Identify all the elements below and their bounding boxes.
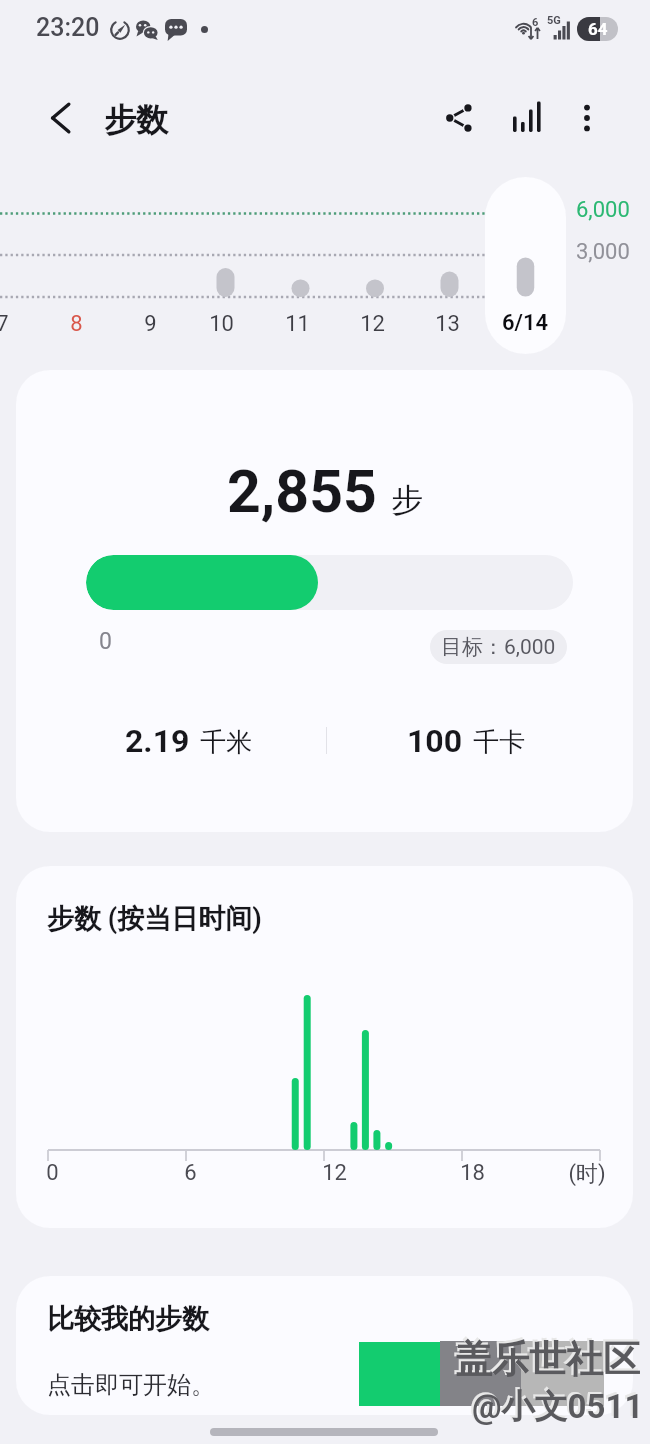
staticText: 11 — [285, 311, 310, 337]
button[interactable]: 步数 (按当日时间) — [16, 866, 633, 1228]
staticText: 2.19 — [125, 722, 190, 760]
staticText: (时) — [568, 1160, 606, 1186]
staticText: @小文0511 — [470, 1384, 642, 1426]
staticText: 2,855 — [227, 457, 377, 526]
staticText: 盖乐世社区 — [455, 1336, 640, 1383]
staticText: 8 — [70, 311, 83, 337]
button[interactable]: 比较我的步数 — [16, 1276, 633, 1415]
staticText: 100 — [407, 722, 463, 760]
staticText: 盖乐世社区 — [453, 1334, 638, 1381]
staticText: 千米 — [200, 726, 252, 759]
staticText: 0 — [46, 1160, 59, 1186]
staticText: 千卡 — [473, 726, 525, 759]
staticText: 64 — [588, 19, 608, 39]
staticText: 18 — [460, 1160, 485, 1186]
staticText: 步数 — [104, 100, 168, 140]
staticText: @小文0511 — [472, 1386, 644, 1428]
staticText: 12 — [322, 1160, 347, 1186]
staticText: 点击即可开始。 — [47, 1370, 215, 1400]
button[interactable]: 6/14 — [485, 177, 566, 354]
staticText: 目标：6,000 — [441, 634, 556, 660]
staticText: 6 — [532, 16, 539, 29]
staticText: 比较我的步数 — [47, 1302, 209, 1336]
staticText: 12 — [360, 311, 385, 337]
button[interactable]: More options — [563, 94, 611, 142]
staticText: 7 — [0, 311, 9, 337]
staticText: 13 — [435, 311, 460, 337]
staticText: 23:20 — [36, 13, 100, 42]
staticText: 0 — [99, 628, 112, 655]
button[interactable]: Chart view — [501, 92, 549, 140]
button[interactable]: Share — [435, 94, 483, 142]
staticText: 9 — [144, 311, 157, 337]
button[interactable]: 2,855 — [16, 370, 633, 832]
staticText: 6/14 — [502, 310, 549, 336]
staticText: 5G — [547, 14, 561, 27]
staticText: 步 — [391, 480, 423, 520]
staticText: 10 — [209, 311, 234, 337]
staticText: 步数 (按当日时间) — [47, 902, 262, 936]
staticText: 6 — [184, 1160, 197, 1186]
staticText: 6,000 — [576, 197, 630, 223]
button[interactable]: Back — [37, 94, 85, 142]
staticText: 3,000 — [576, 239, 630, 265]
